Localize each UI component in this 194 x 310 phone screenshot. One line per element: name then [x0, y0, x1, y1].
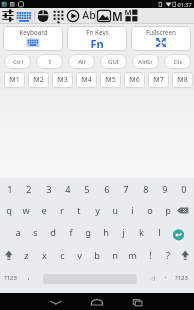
staticText: AltGr [138, 58, 153, 66]
staticText: Fullscreen [146, 28, 176, 36]
staticText: ?123 [175, 274, 188, 282]
staticText: Fn Keys [86, 28, 109, 36]
staticText: GUI [108, 58, 119, 66]
staticText: i [131, 204, 134, 217]
staticText: ?123 [4, 274, 17, 282]
staticText: w [22, 204, 30, 217]
staticText: 01:37 [177, 1, 192, 8]
staticText: 7 [123, 183, 129, 196]
staticText: v [77, 249, 82, 262]
staticText: M7 [153, 75, 164, 85]
staticText: q [6, 204, 12, 217]
staticText: 8 [143, 183, 149, 196]
staticText: s [33, 226, 38, 239]
staticText: M6 [129, 75, 140, 85]
staticText: M [112, 9, 123, 23]
staticText: d [50, 226, 56, 239]
staticText: 5 [84, 183, 90, 196]
staticText: l [158, 226, 161, 239]
staticText: :-) [150, 275, 155, 282]
staticText: e [41, 204, 47, 217]
staticText: 1 [7, 183, 13, 196]
staticText: 9 [162, 183, 168, 196]
staticText: Ab [82, 8, 96, 22]
staticText: 0 [181, 183, 187, 196]
staticText: Keyboard [19, 28, 48, 36]
staticText: 4 [65, 183, 71, 196]
staticText: g [85, 226, 91, 239]
staticText: M5 [105, 75, 116, 85]
staticText: y [95, 204, 100, 217]
staticText: ? [166, 249, 170, 262]
staticText: k [139, 226, 144, 239]
staticText: 6 [104, 183, 110, 196]
staticText: M3 [57, 75, 68, 85]
staticText: Fn [90, 36, 104, 50]
staticText: c [60, 249, 65, 262]
staticText: ⇧ [47, 58, 53, 65]
staticText: M4 [81, 75, 92, 85]
staticText: j [122, 226, 125, 239]
staticText: 2 [26, 183, 32, 196]
staticText: h [103, 226, 109, 239]
staticText: , [27, 271, 30, 281]
staticText: M [124, 7, 132, 17]
staticText: M8 [177, 75, 188, 85]
staticText: x [42, 249, 47, 262]
staticText: m [128, 249, 137, 262]
staticText: M1 [9, 75, 20, 85]
staticText: u [112, 204, 118, 217]
staticText: M2 [33, 75, 44, 85]
staticText: 3 [46, 183, 52, 196]
staticText: ! [149, 249, 152, 262]
staticText: p [165, 204, 171, 217]
staticText: b [94, 249, 100, 262]
staticText: Ctrl [13, 58, 23, 66]
staticText: o [147, 204, 153, 217]
staticText: a [15, 226, 21, 239]
staticText: f [69, 226, 73, 239]
staticText: Alt [78, 58, 86, 66]
staticText: Ctx [173, 58, 183, 66]
staticText: t [77, 204, 81, 217]
staticText: . [164, 270, 167, 280]
staticText: n [112, 249, 118, 262]
staticText: r [60, 204, 64, 217]
staticText: z [24, 249, 29, 262]
